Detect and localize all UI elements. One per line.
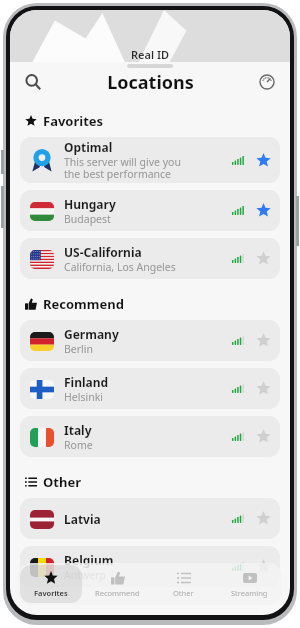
staticText: Recommend: [43, 295, 124, 313]
button[interactable]: Recommend: [86, 565, 148, 603]
staticText: Antwerp: [64, 568, 106, 582]
staticText: Other: [43, 473, 81, 491]
button[interactable]: Finland: [20, 368, 280, 409]
staticText: Rome: [64, 438, 93, 452]
button[interactable]: Optimal: [20, 137, 280, 183]
button[interactable]: Other: [152, 565, 214, 603]
button[interactable]: Favorites: [20, 565, 82, 603]
button[interactable]: Latvia: [20, 498, 280, 539]
staticText: Streaming: [231, 588, 268, 598]
staticText: This server will give you the best perfo…: [64, 155, 181, 181]
staticText: Helsinki: [64, 390, 103, 404]
staticText: Other: [173, 588, 194, 598]
staticText: Real ID: [131, 47, 170, 62]
staticText: Budapest: [64, 212, 111, 226]
button[interactable]: Streaming: [218, 565, 280, 603]
staticText: Belgium: [64, 552, 114, 568]
staticText: US-California: [64, 244, 142, 260]
staticText: Recommend: [95, 588, 140, 598]
staticText: Optimal: [64, 139, 113, 155]
staticText: Locations: [107, 70, 194, 95]
staticText: California, Los Angeles: [64, 260, 176, 274]
staticText: Germany: [64, 326, 119, 342]
staticText: Italy: [64, 422, 92, 438]
staticText: Berlin: [64, 342, 93, 356]
staticText: Finland: [64, 374, 109, 390]
staticText: Latvia: [64, 511, 101, 527]
button[interactable]: Germany: [20, 320, 280, 361]
button[interactable]: Speed test: [252, 67, 282, 97]
staticText: Favorites: [34, 588, 68, 598]
staticText: Hungary: [64, 196, 116, 212]
button[interactable]: Italy: [20, 416, 280, 457]
button[interactable]: US-California: [20, 238, 280, 279]
button[interactable]: Belgium: [20, 546, 280, 587]
button[interactable]: Hungary: [20, 190, 280, 231]
button[interactable]: Search: [18, 67, 48, 97]
staticText: Favorites: [43, 112, 104, 130]
